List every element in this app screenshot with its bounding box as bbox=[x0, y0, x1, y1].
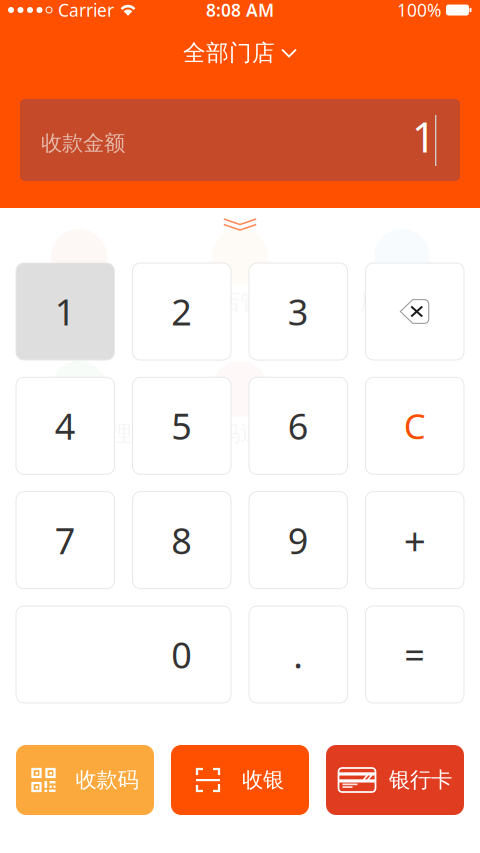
button[interactable]: 1 bbox=[16, 263, 114, 360]
staticText: 0 bbox=[171, 631, 192, 678]
staticText: + bbox=[404, 514, 426, 566]
button[interactable]: 银行卡 bbox=[326, 745, 464, 815]
button[interactable]: 7 bbox=[16, 492, 114, 589]
button[interactable]: + bbox=[365, 492, 464, 589]
staticText: 2 bbox=[171, 288, 192, 335]
button[interactable]: 全部门店 bbox=[140, 33, 340, 73]
staticText: C bbox=[404, 403, 426, 449]
staticText: 7 bbox=[55, 516, 76, 564]
staticText: 1 bbox=[412, 109, 436, 164]
staticText: 用户管理 bbox=[360, 289, 444, 315]
button[interactable]: 8 bbox=[132, 492, 231, 589]
button[interactable]: 5 bbox=[132, 377, 231, 474]
staticText: 6 bbox=[288, 402, 309, 450]
button[interactable]: 收款码 bbox=[16, 745, 154, 815]
button[interactable]: = bbox=[365, 606, 464, 703]
staticText: Carrier bbox=[58, 0, 114, 21]
button[interactable]: 2 bbox=[132, 263, 231, 360]
staticText: 全部门店 bbox=[183, 39, 275, 67]
staticText: 9 bbox=[288, 516, 309, 564]
staticText: 5 bbox=[171, 402, 192, 450]
staticText: 3 bbox=[288, 288, 309, 335]
button[interactable]: 3 bbox=[249, 263, 347, 360]
button[interactable]: 6 bbox=[249, 377, 347, 474]
staticText: 门店管理 bbox=[198, 289, 282, 315]
staticText: 8 bbox=[171, 516, 192, 564]
staticText: 收款金额 bbox=[41, 130, 125, 156]
button[interactable]: . bbox=[249, 606, 347, 703]
button[interactable]: C bbox=[365, 377, 464, 474]
staticText: = bbox=[404, 631, 425, 678]
staticText: . bbox=[293, 631, 303, 678]
button[interactable]: 9 bbox=[249, 492, 347, 589]
button[interactable]: 4 bbox=[16, 377, 114, 474]
staticText: 银行卡 bbox=[389, 767, 452, 793]
staticText: 1 bbox=[55, 288, 76, 335]
staticText: 4 bbox=[55, 402, 76, 450]
staticText: 100% bbox=[397, 0, 441, 21]
staticText: 二维码管理 bbox=[26, 421, 131, 447]
staticText: 收银 bbox=[242, 767, 284, 793]
button[interactable]: 收银 bbox=[171, 745, 309, 815]
button[interactable]: 退格 bbox=[365, 263, 464, 360]
staticText: 收银台 bbox=[47, 289, 110, 315]
button[interactable]: 0 bbox=[16, 606, 231, 703]
staticText: 收款码 bbox=[75, 767, 138, 793]
staticText: 扫码退款 bbox=[198, 421, 282, 447]
staticText: 8:08 AM bbox=[206, 0, 274, 21]
